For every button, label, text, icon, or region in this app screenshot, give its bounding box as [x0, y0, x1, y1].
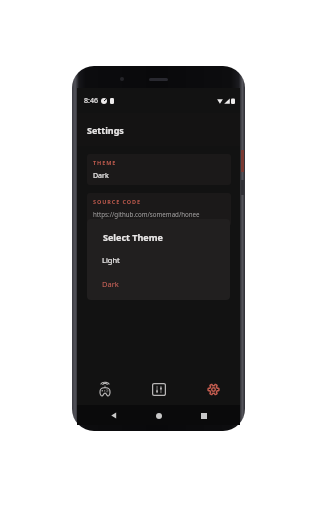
button[interactable]: SOURCE CODE: [87, 193, 231, 226]
staticText: Dark: [102, 279, 119, 289]
button[interactable]: THEME: [87, 154, 231, 185]
staticText: 8:46: [84, 96, 98, 106]
staticText: Dark: [93, 171, 109, 181]
button[interactable]: Settings: [186, 376, 240, 402]
staticText: https://github.com/somemad/honee: [93, 210, 200, 218]
button[interactable]: Games: [77, 376, 132, 402]
staticText: THEME: [93, 159, 117, 166]
staticText: Settings: [87, 124, 124, 136]
staticText: SOURCE CODE: [93, 198, 141, 205]
button[interactable]: Light: [87, 249, 230, 271]
button[interactable]: Dark: [87, 273, 230, 295]
staticText: Select Theme: [103, 231, 163, 243]
staticText: Light: [102, 255, 120, 265]
button[interactable]: Tune: [132, 376, 186, 402]
